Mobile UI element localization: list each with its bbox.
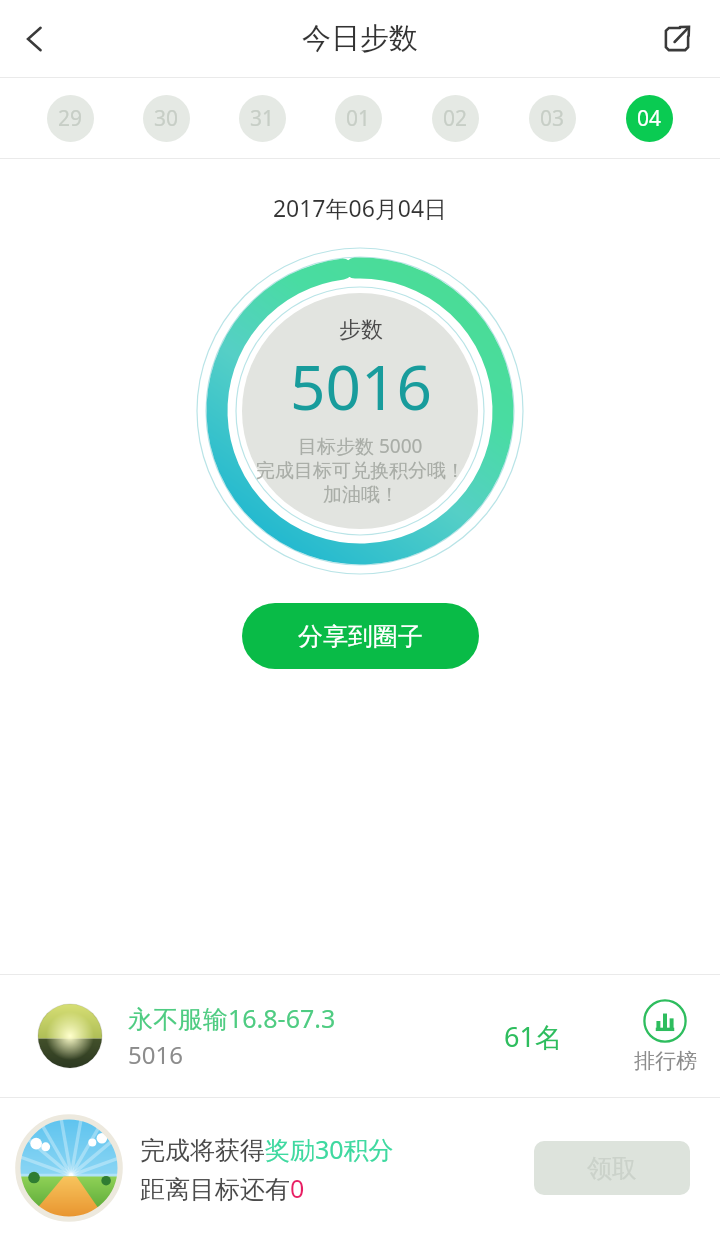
button[interactable]: 29 <box>47 95 94 142</box>
staticText: 04 <box>637 104 662 133</box>
button[interactable]: 03 <box>529 95 576 142</box>
staticText: 完成将获得奖励30积分 <box>140 1132 394 1166</box>
staticText: 加油哦！ <box>323 483 399 507</box>
staticText: 距离目标还有0 <box>140 1171 305 1205</box>
staticText: 领取 <box>587 1153 637 1184</box>
button[interactable]: 永不服输16.8-67.3 <box>0 975 720 1097</box>
staticText: 永不服输16.8-67.3 <box>128 1001 336 1035</box>
staticText: 03 <box>540 104 565 133</box>
staticText: 5016 <box>290 344 432 428</box>
button[interactable]: 排行榜 <box>618 999 712 1074</box>
staticText: 分享到圈子 <box>298 621 423 652</box>
staticText: 30 <box>154 104 179 133</box>
button[interactable]: 02 <box>432 95 479 142</box>
button[interactable]: Back <box>6 10 64 68</box>
staticText: 29 <box>58 104 83 133</box>
button[interactable]: 04 <box>626 95 673 142</box>
button[interactable]: 30 <box>143 95 190 142</box>
staticText: 02 <box>443 104 468 133</box>
button[interactable]: 31 <box>239 95 286 142</box>
staticText: 今日步数 <box>302 20 418 57</box>
staticText: 5016 <box>128 1038 183 1071</box>
staticText: 排行榜 <box>634 1048 697 1074</box>
staticText: 步数 <box>339 316 383 344</box>
button[interactable]: 01 <box>335 95 382 142</box>
staticText: 01 <box>346 104 371 133</box>
staticText: 61名 <box>504 1018 562 1055</box>
button[interactable]: 领取 <box>534 1141 690 1195</box>
staticText: 31 <box>250 104 275 133</box>
staticText: 2017年06月04日 <box>0 192 720 223</box>
button[interactable]: Share <box>648 10 706 68</box>
staticText: 目标步数 5000 <box>298 433 423 459</box>
button[interactable]: 分享到圈子 <box>242 603 479 669</box>
staticText: 完成目标可兑换积分哦！ <box>256 459 465 483</box>
